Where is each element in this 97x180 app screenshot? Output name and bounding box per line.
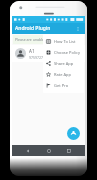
button[interactable]: Back: [23, 146, 33, 156]
staticText: A1: [29, 48, 35, 54]
staticText: Share App: [54, 61, 74, 66]
staticText: How To List: [54, 39, 76, 44]
button[interactable]: More options: [73, 24, 82, 33]
staticText: Please are unable to be send: [15, 37, 63, 42]
button[interactable]: Share App: [43, 58, 84, 69]
staticText: Android Plugin: [15, 25, 51, 32]
staticText: Choose Policy: [54, 50, 80, 55]
staticText: Get Pro Version: [54, 83, 82, 88]
button[interactable]: Rate App: [43, 69, 84, 80]
button[interactable]: How To List: [43, 36, 84, 47]
button[interactable]: Home: [44, 146, 54, 156]
button[interactable]: Choose Policy: [43, 47, 84, 58]
button[interactable]: Add contact: [67, 127, 80, 140]
staticText: 9759727: [29, 55, 44, 60]
staticText: Rate App: [54, 72, 71, 77]
button[interactable]: Get Pro Version: [43, 80, 84, 91]
button[interactable]: Recent apps: [64, 146, 74, 156]
button[interactable]: A1: [12, 45, 85, 62]
